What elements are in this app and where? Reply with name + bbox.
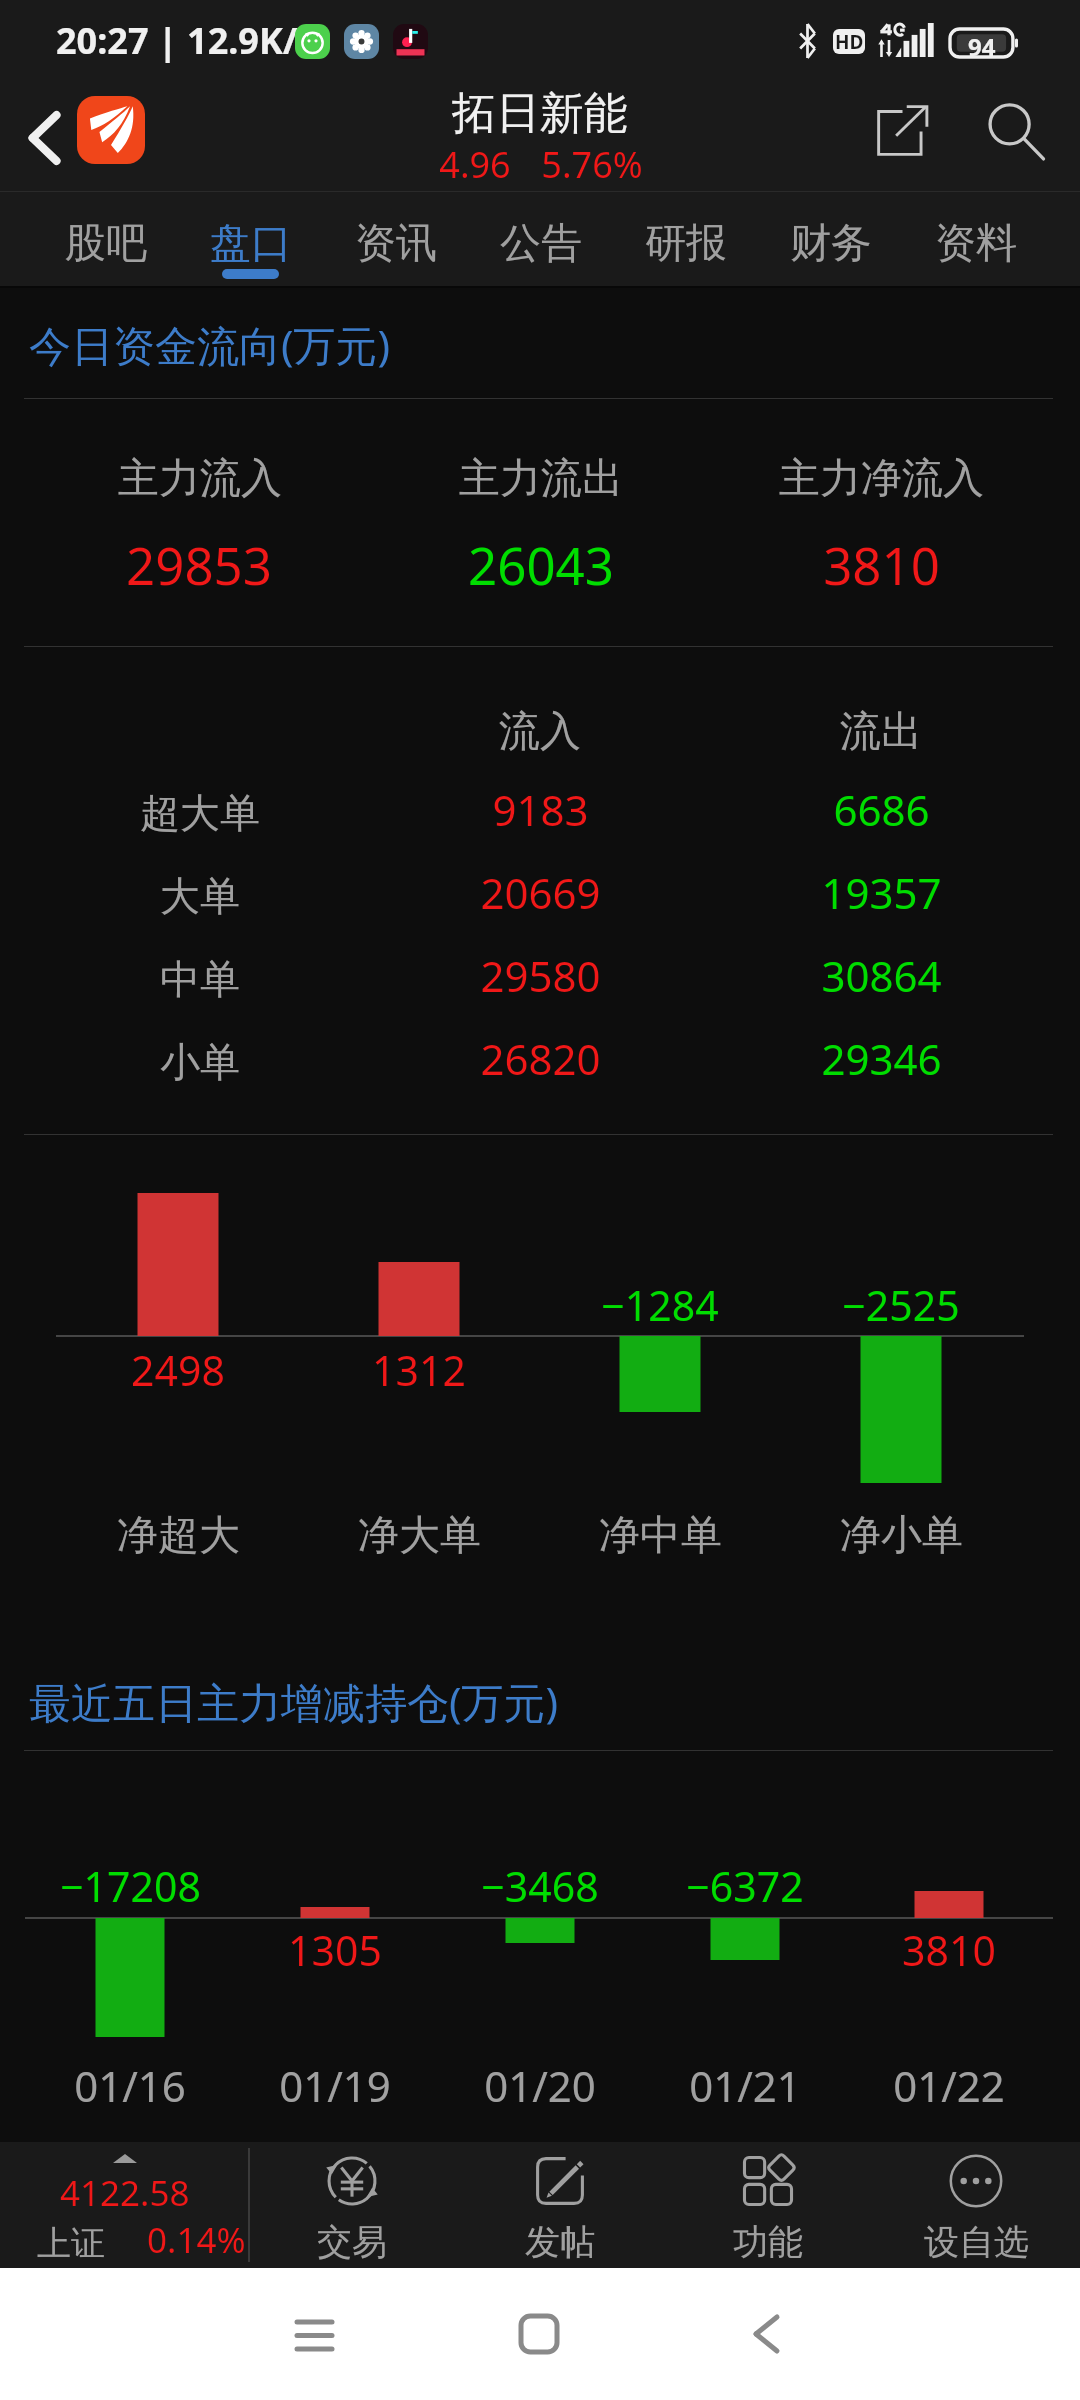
staticText: 资料 [935,218,1017,270]
staticText: 股吧 [65,218,147,270]
staticText: 研报 [645,218,727,270]
staticText: 流入 [499,706,581,758]
button[interactable]: 盘口 [178,192,323,288]
button[interactable]: App home [77,96,145,164]
staticText: 20669 [480,864,601,921]
staticText: 4122.58 [60,2169,190,2217]
button[interactable]: Search [962,84,1070,192]
staticText: 主力净流入 [779,453,984,505]
staticText: 26820 [480,1030,601,1087]
staticText: 01/20 [484,2057,596,2114]
staticText: −17208 [60,1858,201,1914]
button[interactable]: Recent apps [264,2268,364,2400]
staticText: −3468 [481,1858,599,1914]
staticText: −6372 [686,1858,804,1914]
staticText: 超大单 [140,788,260,838]
staticText: 29853 [126,530,272,599]
staticText: 29580 [480,947,601,1004]
button[interactable]: 研报 [613,192,758,288]
staticText: 20:27 | 12.9K/s [56,16,316,65]
staticText: 最近五日主力增减持仓(万元) [29,1673,559,1730]
button[interactable]: Back [716,2268,816,2400]
button[interactable]: 财务 [758,192,903,288]
staticText: 上证 [37,2222,105,2265]
staticText: 净超大 [117,1510,240,1562]
staticText: 01/21 [689,2057,801,2114]
staticText: HD [835,29,864,54]
staticText: 资讯 [355,218,437,270]
button[interactable]: 资讯 [323,192,468,288]
staticText: 2498 [131,1342,225,1398]
button[interactable] [0,770,1080,853]
button[interactable]: 功能 [664,2142,872,2268]
staticText: 9183 [492,781,589,838]
staticText: 0.14% [147,2216,246,2264]
staticText: 中单 [160,954,240,1004]
staticText: 净大单 [358,1510,481,1562]
staticText: 3810 [823,530,940,599]
staticText: 3810 [902,1922,996,1978]
staticText: 大单 [160,871,240,921]
staticText: 4.96 [439,140,511,189]
staticText: 主力流入 [118,453,282,505]
staticText: 01/22 [893,2057,1005,2114]
staticText: 26043 [468,530,614,599]
staticText: 功能 [733,2220,803,2264]
button[interactable]: Home [489,2268,589,2400]
button[interactable] [0,853,1080,936]
staticText: 净小单 [840,1510,963,1562]
button[interactable]: 交易 [248,2142,456,2268]
button[interactable]: 4122.58 [0,2142,248,2268]
staticText: 盘口 [210,218,292,270]
button[interactable]: 股吧 [33,192,178,288]
staticText: 29346 [821,1030,942,1087]
staticText: 流出 [840,706,922,758]
staticText: −1284 [601,1277,719,1333]
staticText: 01/16 [74,2057,186,2114]
staticText: 财务 [790,218,872,270]
staticText: 发帖 [525,2220,595,2264]
button[interactable] [0,1019,1080,1102]
staticText: 1312 [372,1342,466,1398]
button[interactable]: 公告 [468,192,613,288]
staticText: 01/19 [279,2057,391,2114]
staticText: 1305 [288,1922,382,1978]
staticText: 公告 [500,218,582,270]
button[interactable]: 设自选 [872,2142,1080,2268]
staticText: −2525 [842,1277,960,1333]
staticText: 净中单 [599,1510,722,1562]
staticText: 30864 [821,947,942,1004]
staticText: 拓日新能 [452,86,628,141]
button[interactable]: 资料 [903,192,1048,288]
staticText: 今日资金流向(万元) [29,316,391,373]
staticText: 19357 [821,864,942,921]
button[interactable]: Share [852,84,952,192]
staticText: 94 [968,30,996,56]
staticText: 交易 [317,2220,387,2264]
staticText: 小单 [160,1037,240,1087]
button[interactable] [0,936,1080,1019]
button[interactable]: Back [8,84,80,192]
button[interactable]: 发帖 [456,2142,664,2268]
staticText: 设自选 [924,2220,1029,2264]
staticText: 主力流出 [459,453,623,505]
staticText: 5.76% [541,140,643,189]
staticText: 6686 [833,781,930,838]
